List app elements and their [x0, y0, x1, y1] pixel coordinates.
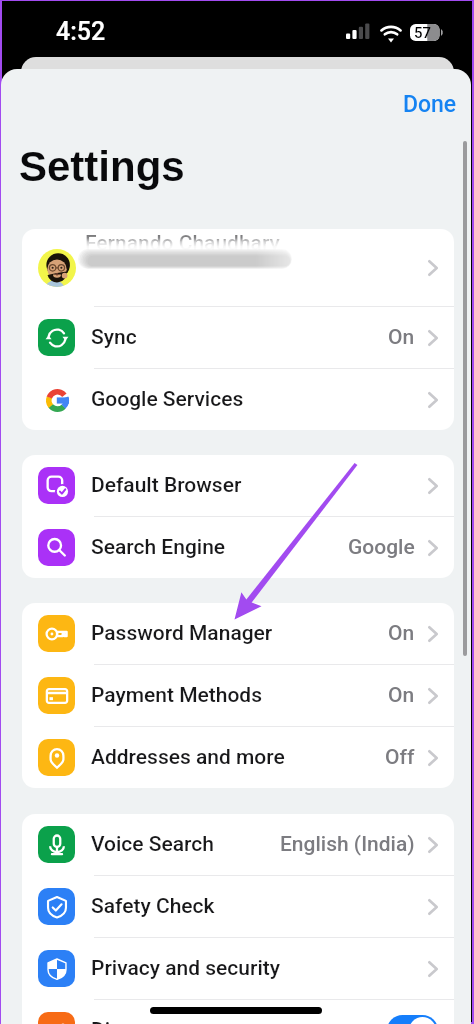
button[interactable]: Fernando Chaudhary — [22, 229, 454, 306]
staticText: On — [388, 683, 415, 708]
staticText: Privacy and security — [91, 956, 281, 981]
button[interactable]: Discover toggle — [387, 1015, 438, 1024]
staticText: Google Services — [91, 387, 244, 412]
staticText: Safety Check — [91, 894, 215, 919]
staticText: 4:52 — [56, 17, 106, 46]
staticText: Done — [403, 91, 457, 118]
button[interactable]: Addresses and more — [22, 727, 454, 788]
button[interactable]: Sync — [22, 307, 454, 368]
staticText: English (India) — [280, 832, 415, 857]
button[interactable]: Default Browser — [22, 455, 454, 516]
staticText: On — [388, 325, 415, 350]
staticText: Password Manager — [91, 621, 273, 646]
button[interactable]: Google Services — [22, 369, 454, 430]
button[interactable]: Payment Methods — [22, 665, 454, 726]
staticText: Google — [348, 535, 415, 560]
button[interactable]: Voice Search — [22, 814, 454, 875]
staticText: Default Browser — [91, 473, 242, 498]
staticText: Fernando Chaudhary — [85, 231, 280, 256]
staticText: Sync — [91, 325, 137, 350]
button[interactable]: Password Manager — [22, 603, 454, 664]
button[interactable]: Discover — [22, 1000, 454, 1024]
staticText: Settings — [19, 143, 185, 190]
staticText: Voice Search — [91, 832, 214, 857]
staticText: Addresses and more — [91, 745, 285, 770]
staticText: Off — [385, 745, 415, 770]
button[interactable]: Privacy and security — [22, 938, 454, 999]
staticText: Discover — [91, 1018, 173, 1024]
staticText: Search Engine — [91, 535, 226, 560]
staticText: Payment Methods — [91, 683, 263, 708]
button[interactable]: Done — [391, 85, 469, 124]
staticText: 57 — [414, 24, 432, 41]
button[interactable]: Search Engine — [22, 517, 454, 578]
staticText: On — [388, 621, 415, 646]
button[interactable]: Safety Check — [22, 876, 454, 937]
